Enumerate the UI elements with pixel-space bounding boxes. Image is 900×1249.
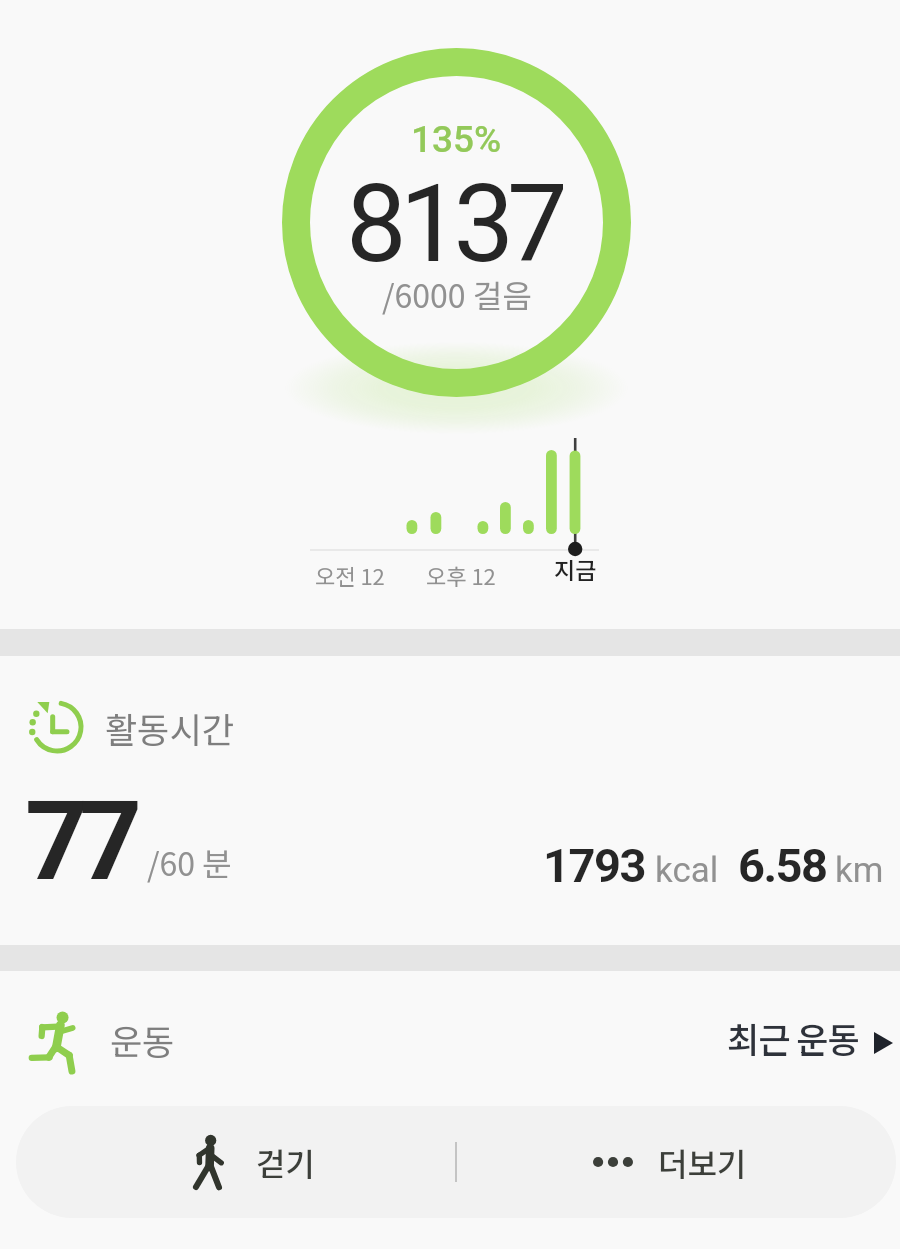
staticText: 최근 운동 <box>727 1012 859 1058</box>
staticText: 걷기 <box>256 1139 315 1185</box>
staticText: 활동시간 <box>105 702 234 753</box>
staticText: /60 분 <box>147 839 232 885</box>
button[interactable]: 더보기 <box>457 1106 896 1218</box>
staticText: kcal <box>655 850 719 891</box>
staticText: 8137 <box>346 161 561 288</box>
staticText: 더보기 <box>658 1139 747 1185</box>
staticText: 오전 12 <box>315 559 385 591</box>
staticText: 오후 12 <box>426 559 496 591</box>
button[interactable]: 걷기 <box>16 1106 455 1218</box>
staticText: km <box>835 850 884 891</box>
staticText: 77 <box>25 777 134 906</box>
staticText: 지금 <box>554 552 597 585</box>
button[interactable]: 활동시간 <box>28 699 234 756</box>
staticText: 1793 <box>543 838 645 893</box>
staticText: /6000 걸음 <box>382 271 532 317</box>
button[interactable]: 최근 운동 <box>727 1012 893 1058</box>
staticText: 135% <box>411 118 502 161</box>
staticText: 6.58 <box>738 838 827 893</box>
staticText: 운동 <box>110 1014 175 1065</box>
